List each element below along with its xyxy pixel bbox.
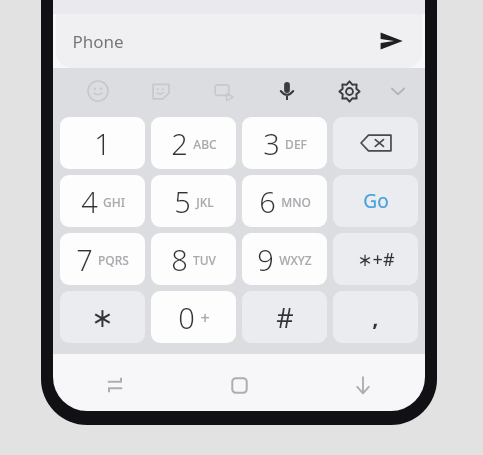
button[interactable]: 8 (151, 233, 236, 285)
staticText: JKL (196, 194, 214, 210)
button[interactable]: Backspace (333, 117, 418, 169)
staticText: PQRS (98, 252, 129, 268)
button[interactable]: GIF (192, 68, 255, 114)
staticText: 9 (257, 240, 274, 279)
staticText: ∗ (91, 302, 114, 333)
button[interactable]: Recent apps (53, 363, 177, 407)
staticText: + (200, 307, 210, 329)
staticText: # (276, 299, 294, 336)
staticText: 0 (178, 298, 195, 337)
button[interactable]: 0 (151, 291, 236, 343)
button[interactable]: Hide keyboard (301, 363, 425, 407)
staticText: 5 (174, 182, 191, 221)
staticText: MNO (281, 194, 311, 210)
button[interactable]: 9 (242, 233, 327, 285)
staticText: 2 (171, 124, 188, 163)
button[interactable]: Home (177, 363, 301, 407)
staticText: 8 (171, 240, 188, 279)
button[interactable]: Phone (56, 14, 422, 68)
staticText: ∗+# (357, 247, 395, 272)
staticText: ABC (193, 136, 217, 152)
button[interactable]: Voice input (255, 68, 318, 114)
button[interactable]: 6 (242, 175, 327, 227)
staticText: 6 (259, 182, 276, 221)
button[interactable]: Send (374, 24, 408, 58)
button[interactable]: Emoji (67, 68, 129, 114)
button[interactable]: Hide keyboard (381, 68, 415, 114)
button[interactable]: 1 (60, 117, 145, 169)
button[interactable]: 7 (60, 233, 145, 285)
button[interactable]: ∗ (60, 291, 145, 343)
button[interactable]: 4 (60, 175, 145, 227)
staticText: 4 (81, 182, 98, 221)
staticText: TUV (193, 252, 216, 268)
staticText: 3 (263, 124, 280, 163)
button[interactable]: 2 (151, 117, 236, 169)
staticText: Phone (72, 30, 124, 53)
staticText: 1 (94, 124, 111, 163)
button[interactable]: Go (333, 175, 418, 227)
staticText: Go (363, 188, 389, 214)
button[interactable]: , (333, 291, 418, 343)
button[interactable]: ∗+# (333, 233, 418, 285)
button[interactable]: Keyboard settings (318, 68, 381, 114)
button[interactable]: Stickers (129, 68, 192, 114)
staticText: , (372, 302, 379, 332)
button[interactable]: # (242, 291, 327, 343)
staticText: WXYZ (279, 252, 312, 268)
button[interactable]: 3 (242, 117, 327, 169)
staticText: 7 (76, 240, 93, 279)
staticText: DEF (285, 136, 307, 152)
staticText: GHI (103, 194, 125, 210)
button[interactable]: 5 (151, 175, 236, 227)
